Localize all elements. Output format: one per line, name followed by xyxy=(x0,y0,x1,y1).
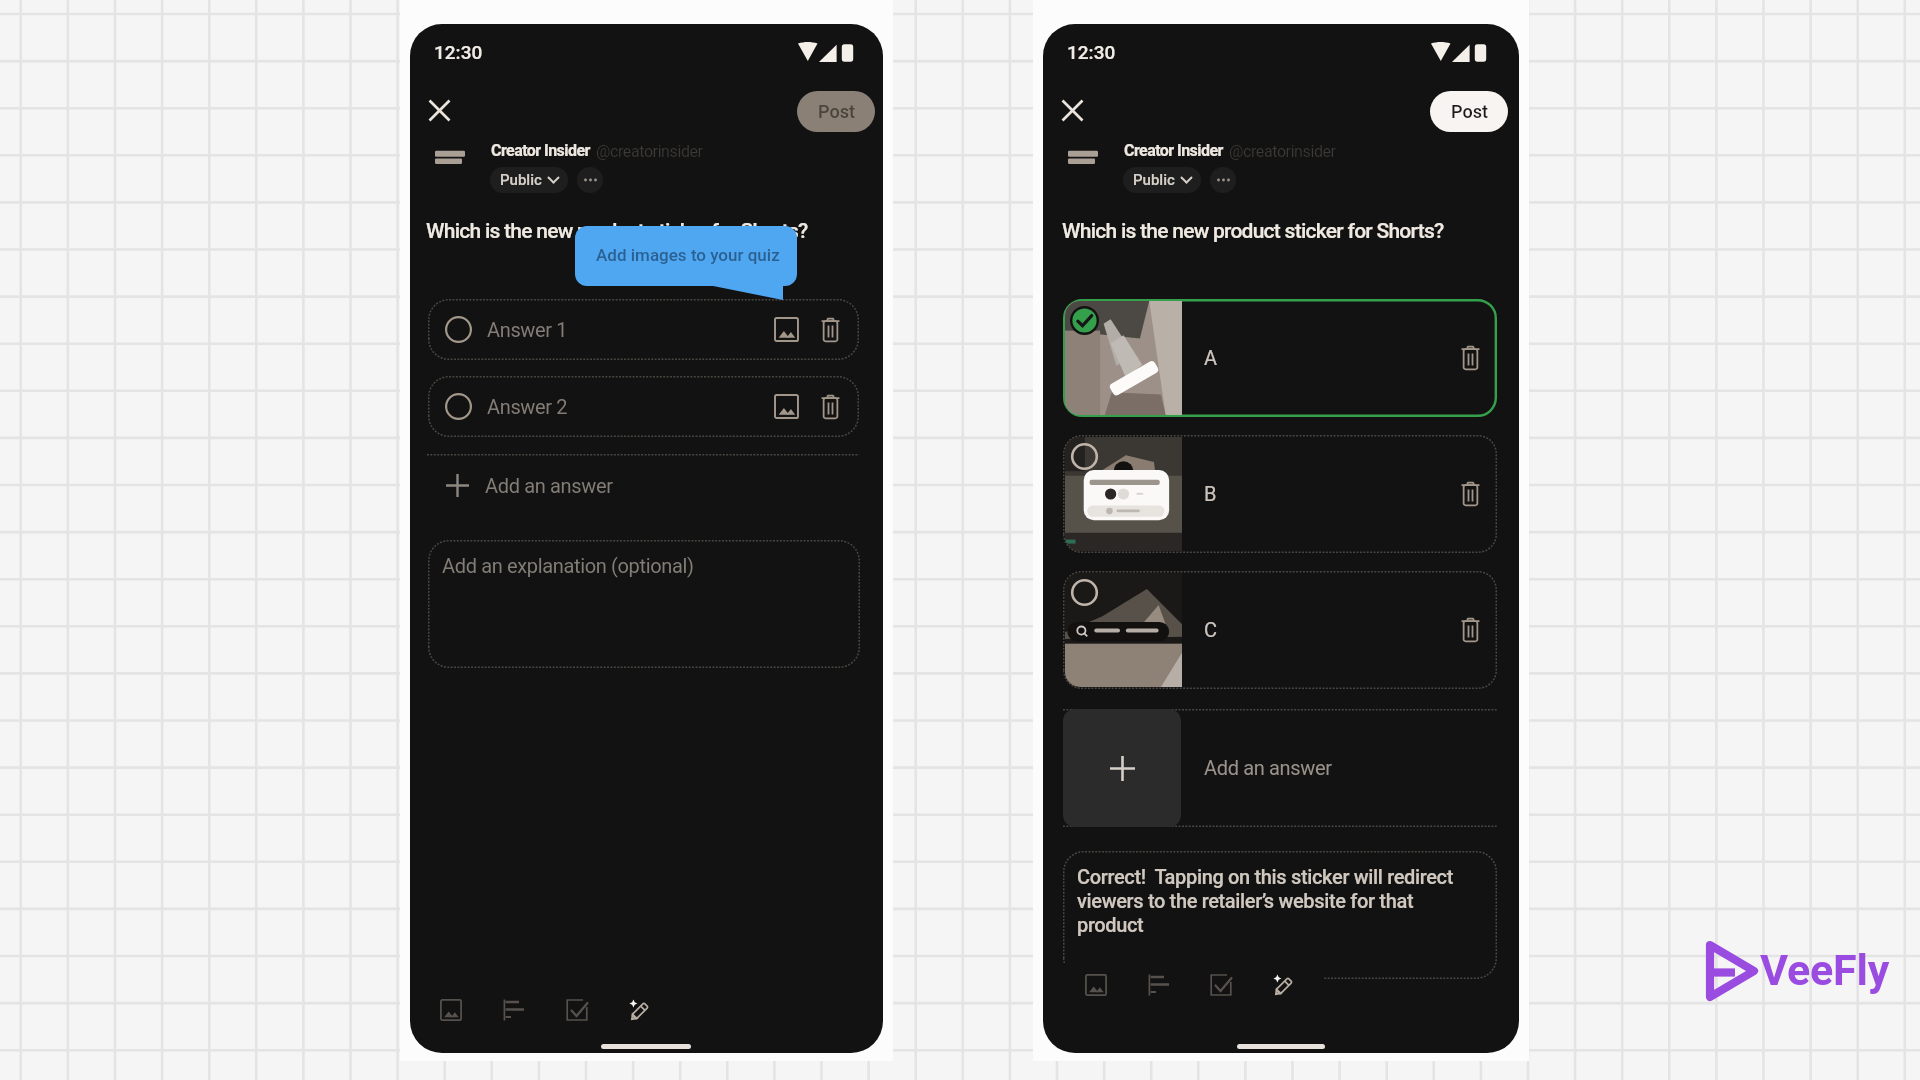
staticText: 12:30 xyxy=(434,41,483,63)
button[interactable]: Quiz xyxy=(1204,968,1238,1002)
staticText: Public xyxy=(500,171,542,189)
button[interactable]: Delete xyxy=(1461,345,1480,370)
button[interactable]: More options xyxy=(577,167,603,193)
staticText: @creatorinsider xyxy=(1229,142,1336,161)
staticText: 12:30 xyxy=(1067,41,1116,63)
staticText: VeeFly xyxy=(1760,945,1890,995)
button[interactable]: Add image xyxy=(434,993,468,1027)
button[interactable]: Post xyxy=(1430,91,1508,132)
staticText: Add images to your quiz xyxy=(596,245,780,265)
button[interactable]: Answer 2 xyxy=(428,376,859,437)
button[interactable]: Public xyxy=(490,167,568,193)
button[interactable]: Draw xyxy=(1267,968,1301,1002)
staticText: Answer 2 xyxy=(487,395,568,418)
button[interactable]: Delete xyxy=(821,317,840,342)
button[interactable]: Quiz xyxy=(560,993,594,1027)
staticText: Which is the new product sticker for Sho… xyxy=(1062,219,1444,244)
button[interactable]: C xyxy=(1063,571,1497,689)
button[interactable]: Add image xyxy=(774,394,799,419)
staticText: Correct! Tapping on this sticker will re… xyxy=(1077,865,1469,937)
button[interactable]: Answer 1 xyxy=(428,299,859,360)
button[interactable]: Correct! Tapping on this sticker will re… xyxy=(1063,851,1497,979)
staticText: B xyxy=(1204,482,1217,505)
button[interactable]: Poll xyxy=(497,993,531,1027)
button[interactable]: Delete xyxy=(1461,481,1480,506)
staticText: Creator Insider xyxy=(491,141,590,160)
staticText: Post xyxy=(818,101,855,122)
button[interactable]: Delete xyxy=(1461,617,1480,642)
button[interactable]: Public xyxy=(1123,167,1201,193)
button[interactable]: Post xyxy=(797,91,875,132)
staticText: A xyxy=(1204,346,1217,369)
button[interactable]: B xyxy=(1063,435,1497,553)
button[interactable]: Delete xyxy=(821,394,840,419)
button[interactable]: Draw xyxy=(623,993,657,1027)
button[interactable]: Add an answer xyxy=(427,454,859,514)
staticText: Creator Insider xyxy=(1124,141,1223,160)
button[interactable]: More options xyxy=(1210,167,1236,193)
button[interactable]: Close xyxy=(1052,90,1092,130)
button[interactable]: Add an answer xyxy=(1063,709,1497,827)
staticText: Add an answer xyxy=(1204,756,1332,779)
button[interactable]: Add image xyxy=(1079,968,1113,1002)
button[interactable]: Close xyxy=(419,90,459,130)
button[interactable]: Add an explanation (optional) xyxy=(428,540,860,668)
button[interactable]: Poll xyxy=(1142,968,1176,1002)
staticText: Answer 1 xyxy=(487,318,568,341)
button[interactable]: A xyxy=(1063,299,1497,417)
staticText: Add an answer xyxy=(485,474,613,497)
staticText: Which is the new product sticker for Sho… xyxy=(426,219,808,244)
staticText: Public xyxy=(1133,171,1175,189)
staticText: Add an explanation (optional) xyxy=(442,554,694,577)
staticText: @creatorinsider xyxy=(596,142,703,161)
button[interactable]: Add image xyxy=(774,317,799,342)
staticText: Post xyxy=(1451,101,1488,122)
staticText: C xyxy=(1204,618,1217,641)
